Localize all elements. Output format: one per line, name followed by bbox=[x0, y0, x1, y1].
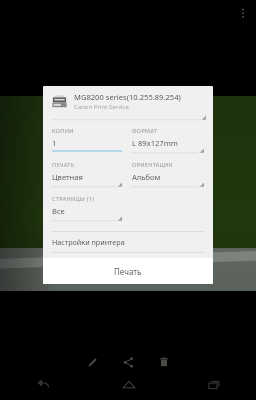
button[interactable]: СТРАНИЦЫ (1) bbox=[52, 195, 122, 222]
staticText: MG8200 series(10.255.89.254) bbox=[74, 92, 181, 102]
button[interactable]: ПЕЧАТЬ bbox=[52, 161, 122, 188]
staticText: Все bbox=[52, 206, 65, 216]
staticText: ПЕЧАТЬ bbox=[52, 161, 75, 169]
staticText: Настройки принтера bbox=[52, 237, 125, 247]
button[interactable]: Share bbox=[115, 352, 141, 372]
staticText: Canon Print Service bbox=[74, 103, 129, 111]
button[interactable]: Recent apps bbox=[171, 370, 256, 400]
button[interactable]: Печать bbox=[43, 258, 213, 284]
staticText: СТРАНИЦЫ (1) bbox=[52, 195, 95, 203]
staticText: КОПИИ bbox=[52, 127, 74, 135]
button[interactable]: Back bbox=[0, 370, 86, 400]
staticText: ОРИЕНТАЦИЯ bbox=[132, 161, 173, 169]
button[interactable]: Edit bbox=[79, 352, 105, 372]
staticText: Цветная bbox=[52, 172, 83, 182]
staticText: Альбом bbox=[132, 172, 161, 182]
staticText: 1 bbox=[52, 138, 57, 148]
button[interactable]: Home bbox=[86, 370, 171, 400]
button[interactable]: ОРИЕНТАЦИЯ bbox=[132, 161, 204, 188]
button[interactable]: ФОРМАТ bbox=[132, 127, 204, 154]
staticText: ФОРМАТ bbox=[132, 127, 158, 135]
button[interactable]: Настройки принтера bbox=[43, 232, 213, 252]
staticText: Печать bbox=[114, 266, 142, 277]
button[interactable]: MG8200 series(10.255.89.254) bbox=[43, 86, 213, 116]
staticText: L 89x127mm bbox=[132, 138, 178, 148]
button[interactable]: More options bbox=[234, 4, 252, 22]
button[interactable]: Delete bbox=[151, 352, 177, 372]
